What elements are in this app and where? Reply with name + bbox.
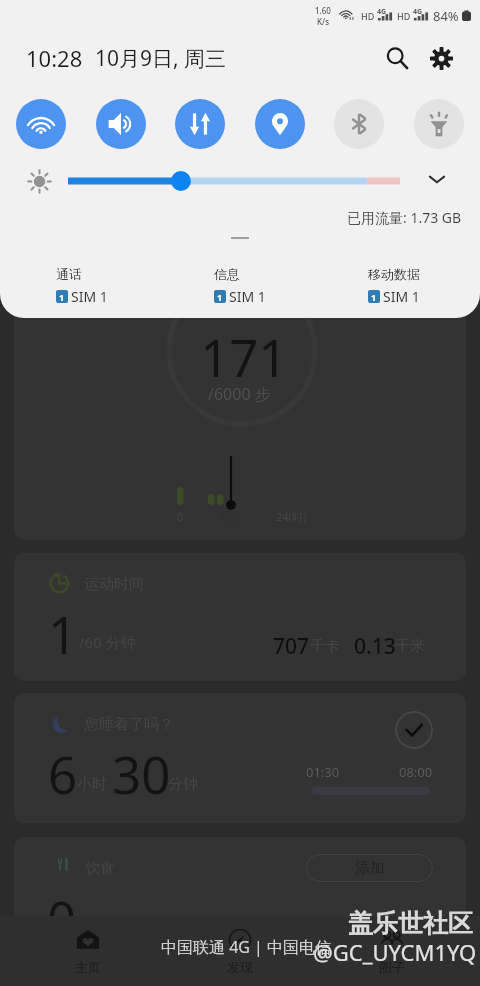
staticText: 6 <box>48 739 78 808</box>
staticText: 01:30 <box>306 763 340 781</box>
staticText: 08:00 <box>399 763 433 781</box>
staticText: 4G <box>377 7 387 17</box>
staticText: 1 <box>371 291 377 303</box>
button[interactable]: Expand <box>421 163 453 195</box>
staticText: 10月9日, 周三 <box>95 44 227 73</box>
staticText: 移动数据 <box>368 266 420 282</box>
staticText: 10:28 <box>26 43 83 73</box>
button[interactable]: 添加 <box>306 854 433 882</box>
staticText: 饮食 <box>85 859 115 878</box>
staticText: 千卡 <box>310 637 340 656</box>
button[interactable]: Flashlight <box>414 99 464 149</box>
staticText: 1.60 <box>315 5 331 16</box>
button[interactable]: Wi-Fi <box>16 99 66 149</box>
staticText: 中国联通 4G | 中国电信 <box>161 936 332 958</box>
button[interactable]: 主页 <box>48 916 128 986</box>
button[interactable]: Settings <box>419 36 463 80</box>
staticText: SIM 1 <box>229 287 266 306</box>
staticText: SIM 1 <box>71 287 108 306</box>
staticText: 已用流量: 1.73 GB <box>347 208 462 227</box>
staticText: HD <box>361 10 375 22</box>
staticText: 0 <box>177 509 184 524</box>
staticText: 圈子 <box>379 959 405 975</box>
staticText: 707 <box>273 632 310 661</box>
staticText: @GC_UYCM1YQ <box>313 937 477 967</box>
staticText: 4G <box>413 7 423 17</box>
button[interactable]: 圈子 <box>352 916 432 986</box>
button[interactable]: Sound <box>96 99 146 149</box>
staticText: HD <box>397 10 411 22</box>
staticText: 您睡着了吗？ <box>84 715 174 734</box>
staticText: 0 <box>47 884 77 953</box>
button[interactable]: Confirm sleep <box>395 711 433 749</box>
staticText: /6000 步 <box>208 383 271 405</box>
staticText: 分钟 <box>168 775 198 794</box>
staticText: 1 <box>59 291 65 303</box>
staticText: 发现 <box>227 959 253 975</box>
staticText: 运动时间 <box>84 575 144 594</box>
staticText: 现在 <box>220 509 242 523</box>
button[interactable]: Bluetooth <box>334 99 384 149</box>
staticText: 1 <box>48 599 78 668</box>
button[interactable]: 信息 <box>214 266 266 306</box>
staticText: /60 分钟 <box>79 632 136 652</box>
staticText: K/s <box>317 16 330 27</box>
staticText: 添加 <box>355 859 385 878</box>
button[interactable]: 移动数据 <box>368 266 420 306</box>
staticText: 0.13 <box>354 632 396 661</box>
button[interactable]: Brightness <box>68 163 400 199</box>
staticText: 171 <box>200 322 288 391</box>
staticText: SIM 1 <box>383 287 420 306</box>
staticText: 千米 <box>395 637 425 656</box>
staticText: 84% <box>433 7 459 25</box>
staticText: 信息 <box>214 266 240 282</box>
staticText: 30 <box>112 739 171 808</box>
button[interactable]: 通话 <box>56 266 108 306</box>
staticText: 小时 <box>77 775 107 794</box>
button[interactable]: 发现 <box>200 916 280 986</box>
button[interactable]: Location <box>255 99 305 149</box>
staticText: 盖乐世社区 <box>348 908 473 939</box>
staticText: 通话 <box>56 266 82 282</box>
button[interactable]: Mobile data <box>175 99 225 149</box>
staticText: 主页 <box>75 959 101 975</box>
staticText: 24(时) <box>276 509 307 524</box>
staticText: 1 <box>217 291 223 303</box>
button[interactable]: Search <box>375 36 419 80</box>
